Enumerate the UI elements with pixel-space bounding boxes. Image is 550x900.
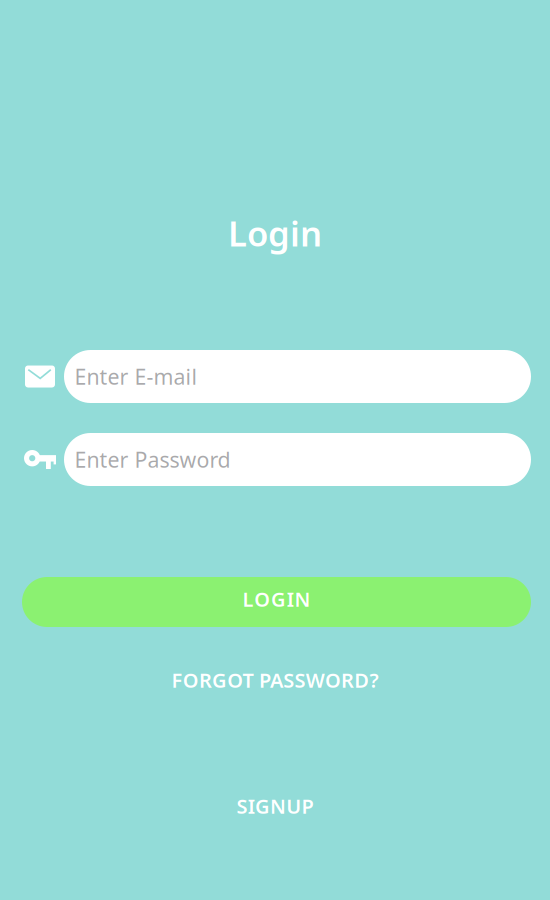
- staticText: SIGNUP: [236, 793, 313, 819]
- button[interactable]: Enter E-mail: [64, 350, 531, 403]
- staticText: Enter E-mail: [74, 362, 197, 391]
- staticText: LOGIN: [242, 586, 311, 612]
- staticText: Login: [228, 210, 322, 256]
- button[interactable]: LOGIN: [0, 577, 550, 627]
- button[interactable]: Enter Password: [64, 433, 531, 486]
- staticText: Enter Password: [74, 445, 230, 474]
- button[interactable]: FORGOT PASSWORD?: [115, 665, 435, 695]
- button[interactable]: SIGNUP: [175, 791, 375, 821]
- staticText: FORGOT PASSWORD?: [171, 667, 378, 693]
